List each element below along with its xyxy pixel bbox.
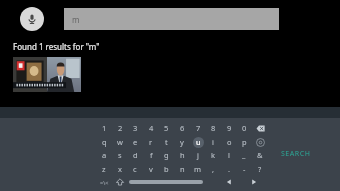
button[interactable]	[13, 57, 81, 92]
button[interactable]: 3	[127, 121, 143, 135]
button[interactable]: ,	[205, 162, 221, 176]
button[interactable]: z	[96, 162, 112, 176]
button[interactable]: 0	[236, 121, 252, 135]
staticText: f	[150, 150, 153, 160]
staticText: 9	[227, 123, 232, 133]
button[interactable]: _	[236, 148, 252, 162]
button[interactable]: Symbols	[96, 175, 112, 189]
staticText: l	[228, 150, 230, 160]
button[interactable]: Move cursor right	[246, 175, 262, 189]
staticText: 6	[180, 123, 185, 133]
staticText: 5	[164, 123, 169, 133]
staticText: 0	[242, 123, 247, 133]
staticText: n	[180, 164, 185, 174]
staticText: v	[149, 164, 153, 174]
button[interactable]: -	[236, 162, 252, 176]
button[interactable]: d	[127, 148, 143, 162]
button[interactable]: r	[143, 135, 159, 149]
staticText: m	[194, 164, 202, 174]
staticText: q	[102, 137, 107, 147]
staticText: o	[227, 137, 232, 147]
staticText: &	[257, 150, 263, 160]
staticText: g	[164, 150, 169, 160]
staticText: -	[243, 164, 246, 174]
staticText: t	[165, 137, 168, 147]
button[interactable]: v	[143, 162, 159, 176]
staticText: 4	[149, 123, 154, 133]
button[interactable]: Shift	[112, 175, 128, 189]
button[interactable]: Voice search	[20, 7, 44, 31]
staticText: s	[118, 150, 122, 160]
staticText: d	[133, 150, 138, 160]
button[interactable]: c	[127, 162, 143, 176]
staticText: 2	[118, 123, 123, 133]
staticText: j	[197, 150, 199, 160]
button[interactable]: g	[158, 148, 174, 162]
button[interactable]: n	[174, 162, 190, 176]
button[interactable]: 5	[158, 121, 174, 135]
button[interactable]: SEARCH	[281, 149, 311, 159]
button[interactable]: x	[112, 162, 128, 176]
button[interactable]: l	[221, 148, 237, 162]
button[interactable]	[252, 121, 268, 135]
button[interactable]: 8	[205, 121, 221, 135]
button[interactable]: q	[96, 135, 112, 149]
button[interactable]: 9	[221, 121, 237, 135]
staticText: 8	[211, 123, 216, 133]
staticText: SEARCH	[281, 149, 311, 159]
button[interactable]: Space	[129, 175, 203, 189]
staticText: e	[133, 137, 138, 147]
button[interactable]: h	[174, 148, 190, 162]
staticText: ,	[212, 164, 215, 174]
staticText: u	[196, 137, 201, 147]
button[interactable]: 7	[190, 121, 206, 135]
staticText: m	[72, 14, 80, 25]
button[interactable]: a	[96, 148, 112, 162]
staticText: y	[180, 137, 184, 147]
button[interactable]: 1	[96, 121, 112, 135]
staticText: r	[149, 137, 153, 147]
button[interactable]: e	[127, 135, 143, 149]
staticText: i	[212, 137, 214, 147]
staticText: h	[180, 150, 185, 160]
staticText: a	[102, 150, 107, 160]
button[interactable]: j	[190, 148, 206, 162]
button[interactable]: 2	[112, 121, 128, 135]
staticText: 3	[133, 123, 138, 133]
button[interactable]: k	[205, 148, 221, 162]
staticText: 1	[102, 123, 107, 133]
button[interactable]: p	[236, 135, 252, 149]
staticText: b	[164, 164, 169, 174]
staticText: w	[117, 137, 123, 147]
staticText: _	[242, 150, 246, 160]
button[interactable]: &	[252, 148, 268, 162]
button[interactable]: t	[158, 135, 174, 149]
button[interactable]: ?	[252, 162, 268, 176]
staticText: p	[242, 137, 247, 147]
staticText: =\<	[100, 179, 109, 186]
button[interactable]: 4	[143, 121, 159, 135]
button[interactable]: u	[190, 135, 206, 149]
button[interactable]	[252, 135, 268, 149]
staticText: ?	[258, 164, 262, 174]
button[interactable]: s	[112, 148, 128, 162]
staticText: .	[228, 164, 231, 174]
button[interactable]: .	[221, 162, 237, 176]
button[interactable]: o	[221, 135, 237, 149]
staticText: k	[211, 150, 216, 160]
button[interactable]: m	[190, 162, 206, 176]
staticText: z	[102, 164, 106, 174]
staticText: Found 1 results for "m"	[13, 41, 100, 52]
button[interactable]: 6	[174, 121, 190, 135]
button[interactable]: f	[143, 148, 159, 162]
button[interactable]: i	[205, 135, 221, 149]
staticText: x	[118, 164, 122, 174]
button[interactable]: b	[158, 162, 174, 176]
button[interactable]: w	[112, 135, 128, 149]
button[interactable]: Move cursor left	[221, 175, 237, 189]
staticText: 7	[196, 123, 201, 133]
staticText: c	[133, 164, 137, 174]
button[interactable]: y	[174, 135, 190, 149]
